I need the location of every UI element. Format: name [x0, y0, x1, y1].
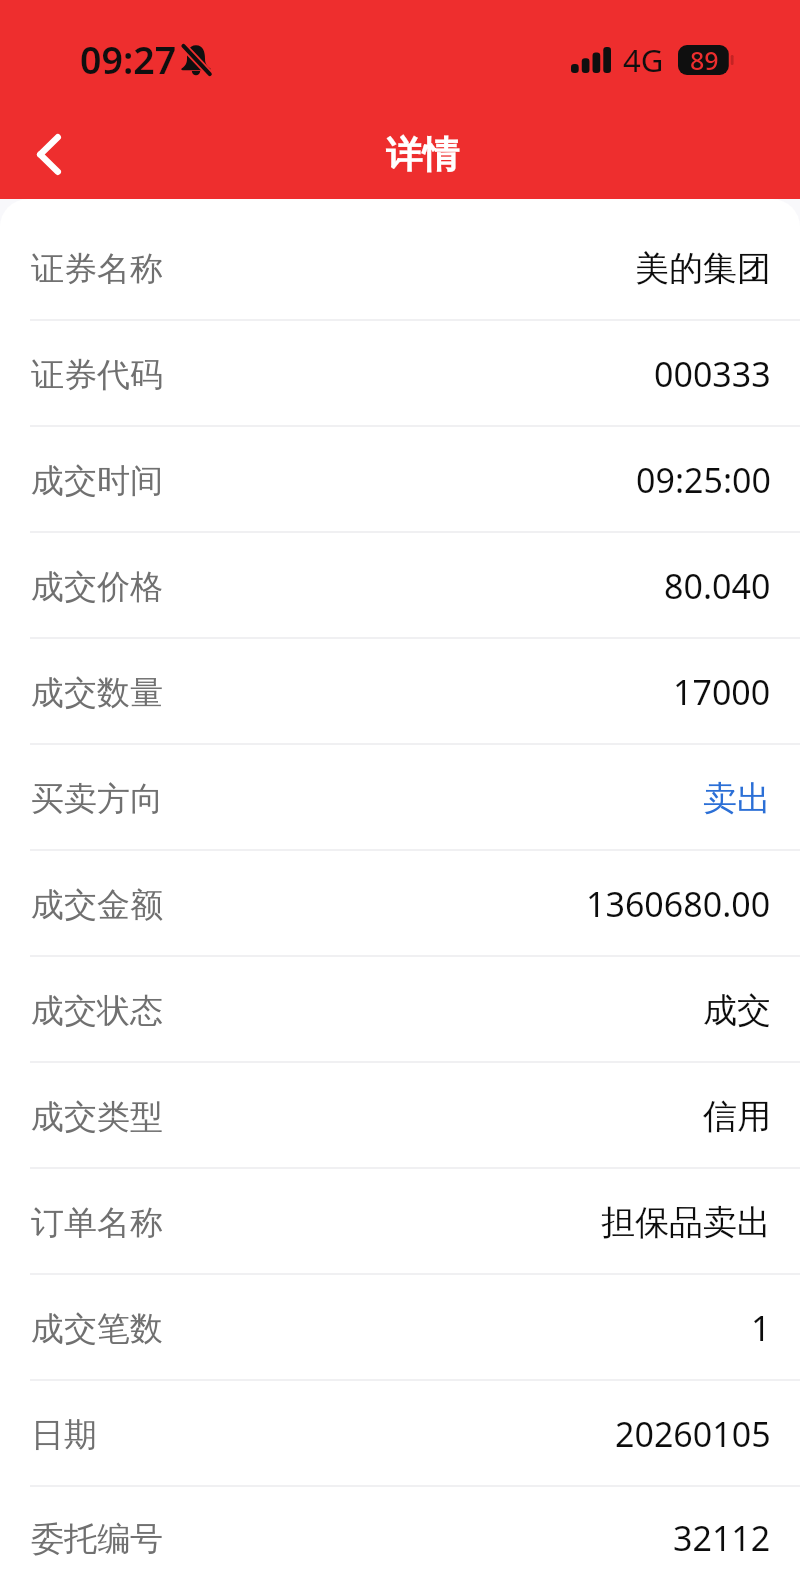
staticText: 卖出	[703, 777, 771, 820]
button[interactable]: 证券代码	[0, 320, 800, 426]
staticText: 80.040	[664, 563, 771, 609]
staticText: 1	[751, 1305, 771, 1351]
button[interactable]: 订单名称	[0, 1168, 800, 1274]
staticText: 订单名称	[31, 1202, 163, 1244]
staticText: 1360680.00	[586, 881, 771, 927]
staticText: 17000	[673, 669, 771, 715]
button[interactable]: 成交状态	[0, 956, 800, 1062]
button[interactable]: 成交价格	[0, 532, 800, 638]
staticText: 09:25:00	[636, 457, 771, 503]
staticText: 20260105	[615, 1411, 771, 1457]
staticText: 担保品卖出	[601, 1201, 771, 1244]
staticText: 证券代码	[31, 354, 163, 396]
staticText: 成交数量	[31, 672, 163, 714]
staticText: 信用	[703, 1095, 771, 1138]
staticText: 4G	[623, 39, 664, 81]
button[interactable]: 成交金额	[0, 850, 800, 956]
staticText: 09:27	[80, 34, 177, 85]
button[interactable]: 委托编号	[0, 1486, 800, 1588]
staticText: 委托编号	[31, 1518, 163, 1560]
staticText: 成交时间	[31, 460, 163, 502]
staticText: 详情	[386, 132, 459, 178]
staticText: 成交金额	[31, 884, 163, 926]
staticText: 日期	[31, 1414, 97, 1456]
button[interactable]: 日期	[0, 1380, 800, 1486]
staticText: 89	[690, 43, 719, 77]
staticText: 成交状态	[31, 990, 163, 1032]
staticText: 成交类型	[31, 1096, 163, 1138]
staticText: 成交	[703, 989, 771, 1032]
staticText: 成交价格	[31, 566, 163, 608]
staticText: 000333	[654, 351, 771, 397]
button[interactable]: 证券名称	[0, 214, 800, 320]
staticText: 买卖方向	[31, 778, 163, 820]
staticText: 成交笔数	[31, 1308, 163, 1350]
button[interactable]: 买卖方向	[0, 744, 800, 850]
staticText: 美的集团	[635, 247, 771, 290]
button[interactable]: 成交笔数	[0, 1274, 800, 1380]
staticText: 证券名称	[31, 248, 163, 290]
button[interactable]: Back	[12, 117, 86, 191]
button[interactable]: 成交数量	[0, 638, 800, 744]
staticText: 32112	[673, 1515, 771, 1561]
button[interactable]: 成交时间	[0, 426, 800, 532]
button[interactable]: 成交类型	[0, 1062, 800, 1168]
